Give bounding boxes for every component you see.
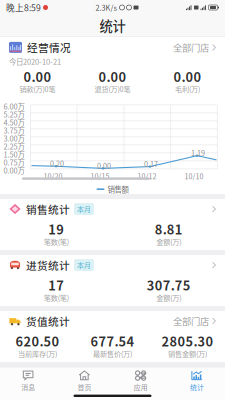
staticText: 8.81 — [155, 220, 183, 238]
staticText: 0.00 — [98, 67, 126, 86]
staticText: 毛利(万) — [175, 84, 200, 94]
staticText: 首页 — [77, 382, 91, 392]
staticText: 6.00万 — [3, 101, 24, 112]
button[interactable]: 进货统计 — [0, 255, 225, 271]
staticText: 销售金额(万) — [168, 348, 207, 359]
staticText: 应用 — [134, 382, 148, 392]
staticText: 当前库存(万) — [18, 348, 57, 359]
staticText: 3.75万 — [3, 125, 24, 136]
staticText: 10/12 — [137, 171, 156, 181]
staticText: 10/10 — [184, 171, 203, 181]
staticText: 2.25万 — [3, 141, 24, 152]
staticText: 0.20 — [50, 158, 64, 169]
staticText: 本月 — [77, 204, 91, 214]
staticText: 1.50万 — [3, 149, 24, 160]
staticText: 0.00万 — [3, 165, 24, 176]
staticText: 0.17 — [144, 159, 158, 169]
staticText: 19 — [48, 220, 64, 238]
button[interactable]: 首页 — [56, 368, 112, 395]
staticText: 货值统计 — [26, 313, 70, 329]
staticText: 今日2020-10-21 — [9, 56, 61, 67]
staticText: 笔数(笔) — [44, 236, 69, 247]
staticText: 10/20 — [43, 171, 62, 181]
staticText: 退货(万)0笔 — [94, 84, 130, 94]
staticText: 销款(万)0笔 — [19, 84, 55, 94]
staticText: 晚上8:59 — [6, 1, 41, 14]
staticText: 全部门店 — [173, 41, 209, 54]
button[interactable]: 消息 — [0, 368, 56, 395]
staticText: 2.3K/s — [95, 2, 116, 13]
staticText: 3.00万 — [3, 133, 24, 144]
button[interactable]: 货值统计 — [0, 311, 225, 327]
staticText: 307.75 — [147, 276, 191, 294]
staticText: 620.50 — [15, 332, 59, 350]
button[interactable]: 统计 — [169, 368, 225, 395]
staticText: 10/15 — [90, 171, 109, 181]
staticText: 0.00 — [173, 67, 201, 86]
staticText: 0.75万 — [3, 157, 24, 168]
staticText: 笔数(笔) — [44, 292, 69, 303]
staticText: 金额(万) — [156, 236, 181, 247]
staticText: 经营情况 — [27, 40, 71, 55]
staticText: 0.00 — [97, 160, 111, 171]
staticText: 5.25万 — [3, 109, 24, 120]
staticText: 统计 — [99, 16, 125, 35]
button[interactable]: 经营情况 — [0, 36, 225, 53]
staticText: 677.54 — [90, 332, 134, 350]
staticText: 金额(万) — [156, 292, 181, 303]
staticText: 0.00 — [23, 67, 51, 86]
staticText: 全部门店 — [173, 314, 209, 328]
staticText: 统计 — [190, 382, 204, 392]
staticText: 4.50万 — [3, 117, 24, 128]
button[interactable]: 销售统计 — [0, 199, 225, 215]
staticText: 2805.30 — [161, 332, 213, 350]
staticText: 17 — [48, 276, 64, 294]
button[interactable]: 应用 — [112, 368, 169, 395]
staticText: 进货统计 — [26, 257, 70, 273]
staticText: 1.19 — [191, 148, 205, 158]
staticText: 最新售价(万) — [93, 348, 132, 359]
staticText: 消息 — [21, 382, 35, 392]
staticText: 销售统计 — [26, 201, 70, 217]
staticText: 销售额 — [107, 184, 128, 195]
staticText: 本月 — [77, 260, 91, 270]
